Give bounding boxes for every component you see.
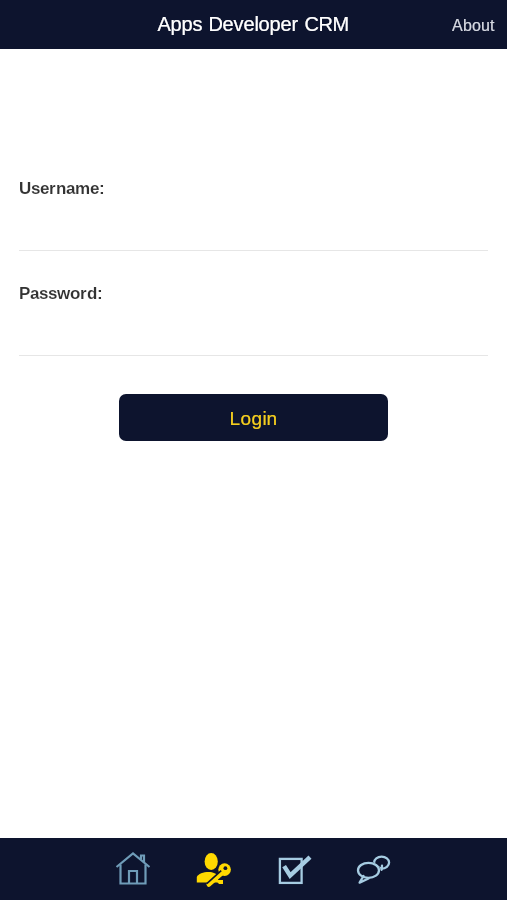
button[interactable]: Tasks [253,838,333,900]
button[interactable]: Login [119,394,388,441]
button[interactable]: Contacts [173,838,253,900]
button[interactable]: Home [93,838,173,900]
button[interactable]: About [447,0,507,49]
button[interactable]: Messages [333,838,413,900]
